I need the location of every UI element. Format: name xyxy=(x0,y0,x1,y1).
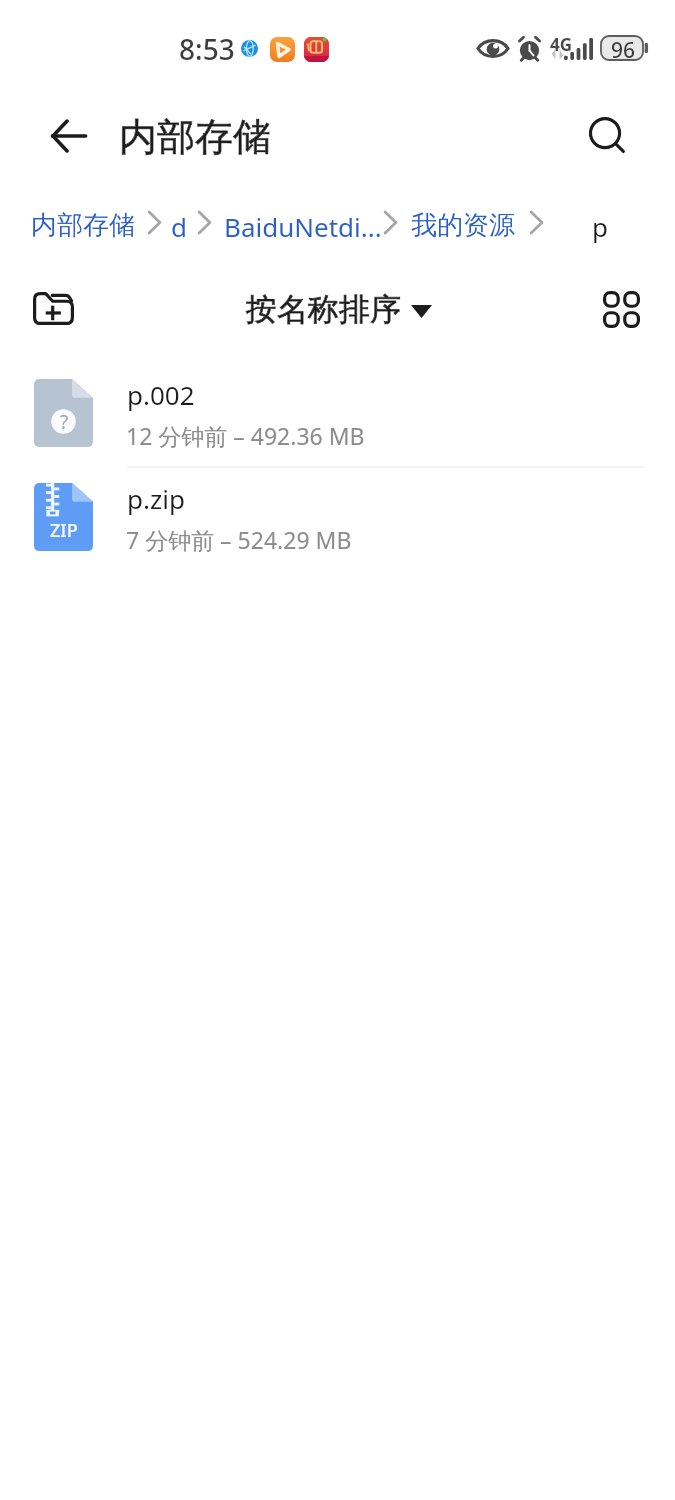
button[interactable]: 内部存储 xyxy=(31,203,135,243)
button[interactable]: 按名称排序 xyxy=(246,288,432,330)
staticText: p.002 xyxy=(127,377,195,412)
staticText: ZIP xyxy=(50,518,78,543)
staticText: BaiduNetdi... xyxy=(224,209,382,244)
staticText: 96 xyxy=(602,36,644,65)
staticText: ? xyxy=(60,409,69,435)
button[interactable]: ZIP xyxy=(0,478,675,582)
button[interactable]: ? xyxy=(0,374,675,478)
button[interactable]: New folder xyxy=(23,278,83,338)
staticText: 按名称排序 xyxy=(246,290,401,329)
button[interactable]: Search xyxy=(581,110,637,166)
staticText: 8:53 xyxy=(179,30,235,68)
button[interactable]: Grid view xyxy=(592,280,650,338)
staticText: p xyxy=(592,209,608,244)
staticText: 我的资源 xyxy=(411,209,515,242)
button[interactable]: Back xyxy=(40,108,96,164)
staticText: 12 分钟前 – 492.36 MB xyxy=(126,420,365,451)
staticText: p.zip xyxy=(127,481,185,516)
staticText: d xyxy=(171,209,187,244)
staticText: 内部存储 xyxy=(31,209,135,242)
button[interactable]: d xyxy=(171,203,187,243)
button[interactable]: BaiduNetdi... xyxy=(224,203,382,243)
staticText: 内部存储 xyxy=(119,113,271,161)
button[interactable]: 我的资源 xyxy=(411,203,515,243)
staticText: 7 分钟前 – 524.29 MB xyxy=(126,524,352,555)
staticText: 4G xyxy=(550,33,573,56)
staticText: 按名称排序 xyxy=(246,290,401,329)
staticText: 内部存储 xyxy=(119,113,271,161)
